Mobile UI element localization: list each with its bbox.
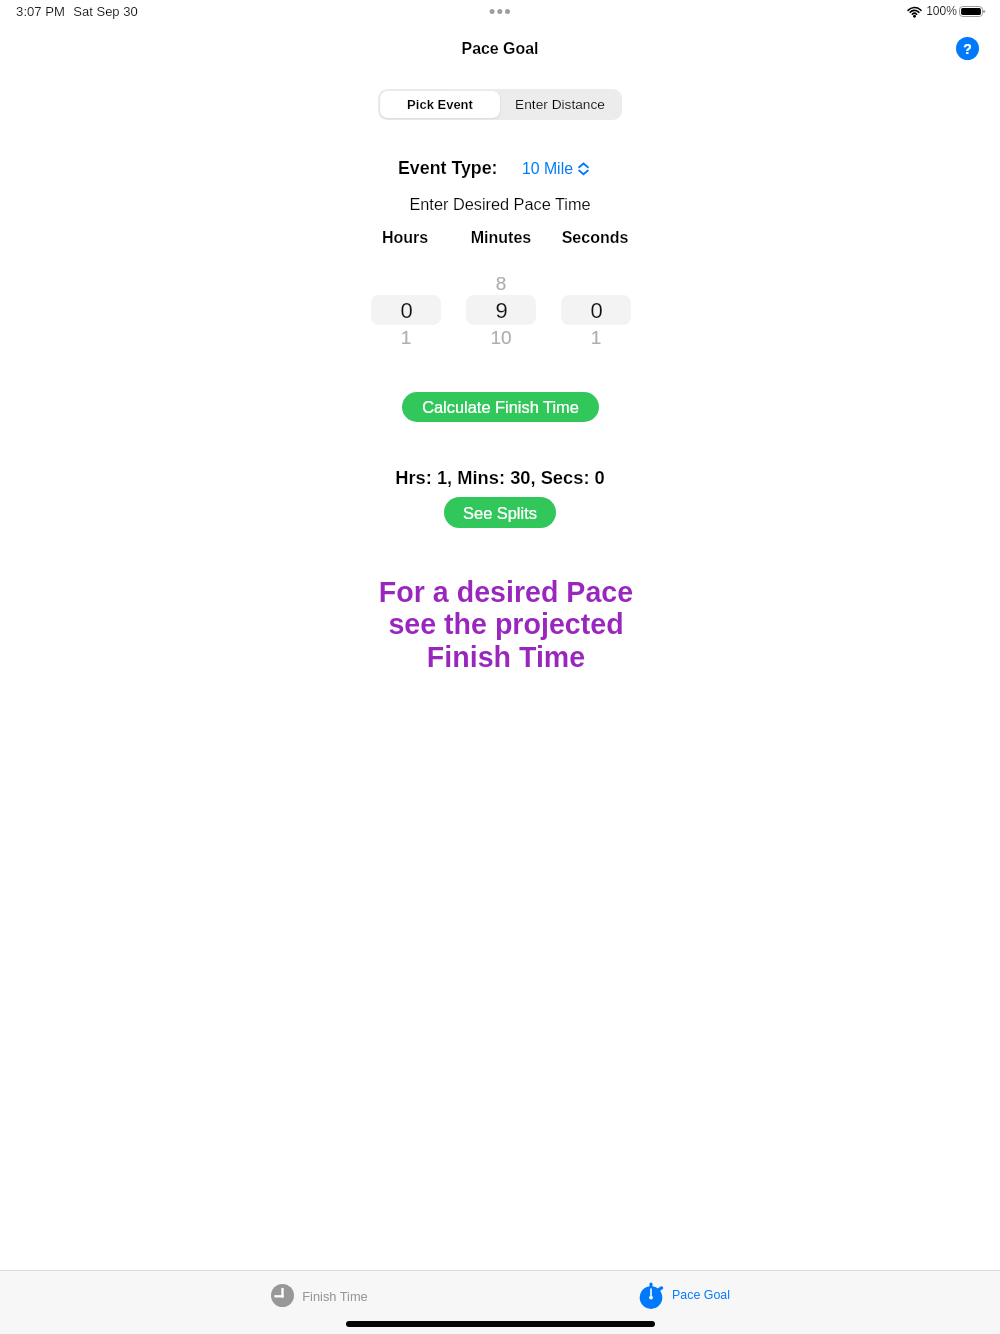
staticText: Enter Distance xyxy=(515,97,605,112)
staticText: 10 xyxy=(451,327,551,348)
staticText: 1 xyxy=(356,327,456,348)
button[interactable]: Help xyxy=(956,37,979,60)
staticText: Finish Time xyxy=(302,1289,368,1303)
staticText: Pace Goal xyxy=(672,1288,730,1302)
staticText: 8 xyxy=(451,273,551,294)
staticText: Pace Goal xyxy=(200,40,800,58)
staticText: ? xyxy=(963,41,972,57)
button[interactable]: Enter Distance xyxy=(500,91,620,118)
button[interactable]: Calculate Finish Time xyxy=(402,392,599,422)
button[interactable]: 9 xyxy=(466,295,536,325)
staticText: 0 xyxy=(400,298,413,323)
staticText: Event Type: xyxy=(398,158,498,178)
staticText: Sat Sep 30 xyxy=(73,4,138,19)
button[interactable]: Finish Time xyxy=(271,1284,368,1307)
staticText: For a desired Pace see the projected Fin… xyxy=(156,576,856,673)
button[interactable]: 0 xyxy=(371,295,441,325)
button[interactable]: Pace Goal xyxy=(639,1282,730,1308)
staticText: Hrs: 1, Mins: 30, Secs: 0 xyxy=(200,467,800,487)
staticText: 3:07 PM xyxy=(16,4,65,19)
button[interactable]: 0 xyxy=(561,295,631,325)
button[interactable]: See Splits xyxy=(444,497,556,528)
staticText: 1 xyxy=(546,327,646,348)
staticText: Minutes xyxy=(441,229,561,247)
staticText: 10 Mile xyxy=(522,160,573,178)
staticText: Seconds xyxy=(535,229,655,247)
staticText: Calculate Finish Time xyxy=(422,398,579,416)
staticText: Pick Event xyxy=(407,97,473,112)
staticText: 100% xyxy=(926,4,957,17)
button[interactable]: 10 Mile xyxy=(522,159,589,178)
staticText: Enter Desired Pace Time xyxy=(200,195,800,213)
staticText: 0 xyxy=(590,298,603,323)
staticText: See Splits xyxy=(463,504,537,522)
staticText: Hours xyxy=(345,229,465,247)
staticText: 9 xyxy=(495,298,508,323)
button[interactable]: Pick Event xyxy=(380,91,500,118)
